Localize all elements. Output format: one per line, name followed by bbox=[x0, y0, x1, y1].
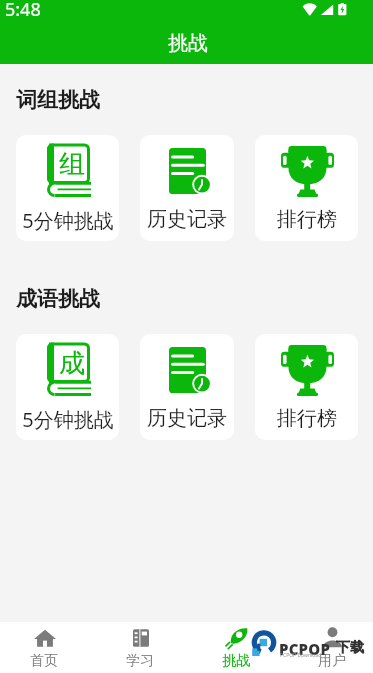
staticText: 成 bbox=[59, 347, 85, 380]
staticText: 挑战 bbox=[168, 31, 208, 56]
button[interactable]: 首页 bbox=[0, 622, 92, 673]
staticText: 挑战 bbox=[222, 652, 250, 670]
staticText: 学习 bbox=[126, 652, 154, 670]
staticText: 首页 bbox=[30, 652, 58, 670]
staticText: 用户 bbox=[318, 652, 346, 670]
other: 首页 bbox=[34, 627, 56, 649]
other: 挑战 bbox=[226, 627, 248, 649]
button[interactable]: 用户 bbox=[284, 622, 373, 673]
other: 学习 bbox=[131, 628, 151, 648]
staticText: 成语挑战 bbox=[16, 286, 100, 312]
staticText: 历史记录 bbox=[147, 207, 227, 232]
other: 用户 bbox=[322, 627, 343, 648]
staticText: 5:48 bbox=[5, 0, 41, 22]
button[interactable]: 组 bbox=[16, 135, 119, 241]
staticText: 历史记录 bbox=[147, 406, 227, 431]
staticText: 组 bbox=[59, 148, 85, 181]
button[interactable]: 挑战 bbox=[188, 622, 284, 673]
staticText: PCPOP Download bbox=[280, 652, 322, 659]
staticText: 5分钟挑战 bbox=[22, 207, 114, 234]
staticText: 排行榜 bbox=[277, 207, 337, 232]
staticText: 排行榜 bbox=[277, 406, 337, 431]
button[interactable]: 历史记录 bbox=[140, 135, 234, 241]
staticText: 下载 bbox=[336, 639, 364, 657]
staticText: 词组挑战 bbox=[16, 87, 100, 113]
button[interactable]: 成 bbox=[16, 334, 119, 440]
button[interactable]: 学习 bbox=[92, 622, 188, 673]
button[interactable]: 排行榜 bbox=[255, 334, 358, 440]
staticText: PCPOP bbox=[279, 639, 331, 659]
button[interactable]: 历史记录 bbox=[140, 334, 234, 440]
button[interactable]: 排行榜 bbox=[255, 135, 358, 241]
staticText: 5分钟挑战 bbox=[22, 406, 114, 433]
